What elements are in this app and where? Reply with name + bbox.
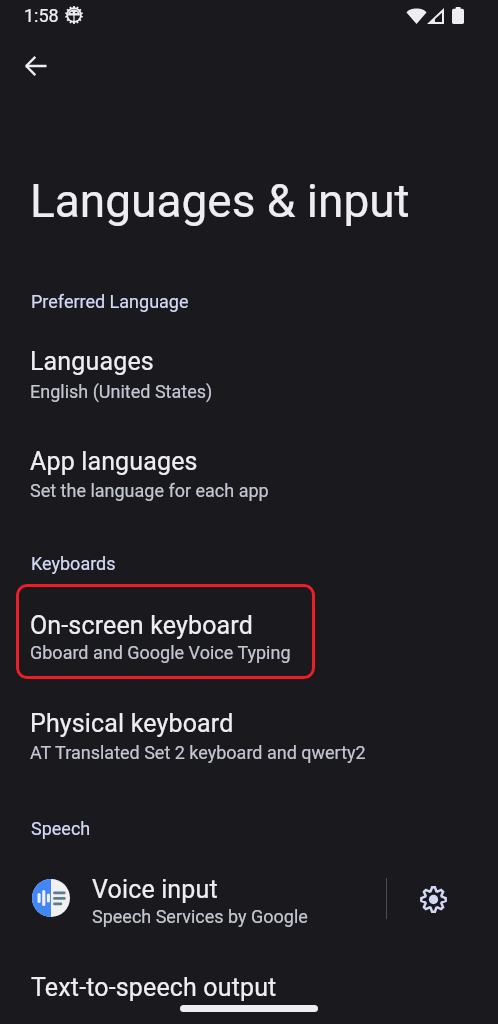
button[interactable] — [0, 960, 498, 1024]
staticText: Speech Services by Google — [92, 906, 308, 927]
button[interactable]: Voice input settings — [409, 875, 457, 923]
staticText: Languages — [30, 347, 154, 376]
button[interactable] — [0, 333, 498, 415]
staticText: Keyboards — [31, 553, 116, 574]
staticText: AT Translated Set 2 keyboard and qwerty2 — [30, 742, 366, 763]
button[interactable] — [0, 860, 386, 936]
staticText: 1:58 — [24, 5, 59, 26]
button[interactable] — [0, 433, 498, 515]
staticText: English (United States) — [30, 381, 213, 402]
button[interactable] — [0, 695, 498, 777]
staticText: App languages — [30, 447, 198, 476]
staticText: Physical keyboard — [30, 709, 234, 738]
staticText: Gboard and Google Voice Typing — [30, 642, 291, 663]
button[interactable] — [0, 597, 498, 679]
staticText: Voice input — [92, 875, 218, 904]
staticText: Languages & input — [30, 174, 410, 228]
staticText: Speech — [31, 818, 91, 839]
staticText: On-screen keyboard — [30, 611, 253, 640]
staticText: Preferred Language — [31, 291, 189, 312]
staticText: Text-to-speech output — [31, 973, 277, 1002]
button[interactable]: Navigate up — [14, 44, 58, 88]
button[interactable] — [16, 584, 315, 679]
staticText: Set the language for each app — [30, 480, 269, 501]
